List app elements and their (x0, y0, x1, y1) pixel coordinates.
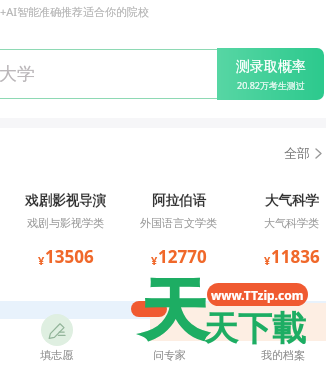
staticText: 天下載 (204, 307, 306, 350)
other: 我的档案 (273, 320, 294, 341)
staticText: 阿拉伯语 (152, 192, 206, 209)
staticText: 问专家 (153, 348, 186, 362)
staticText: 12770 (158, 245, 207, 268)
button[interactable]: 我的档案 (226, 310, 326, 366)
staticText: 天 (141, 269, 207, 352)
staticText: +AI智能准确推荐适合你的院校 (0, 4, 150, 19)
staticText: 戏剧与影视学类 (27, 216, 104, 230)
staticText: 外国语言文学类 (140, 216, 217, 230)
other: 填志愿 (47, 320, 68, 341)
staticText: 我的档案 (261, 348, 305, 362)
staticText: 大学 (0, 63, 35, 86)
button[interactable]: 测录取概率 (217, 48, 324, 100)
staticText: 20.82万考生测过 (237, 79, 306, 91)
staticText: 11836 (271, 245, 320, 268)
button[interactable]: 填志愿 (0, 310, 113, 366)
button[interactable]: 全部 (284, 145, 322, 161)
staticText: 测录取概率 (236, 58, 306, 76)
other: 问专家 (160, 320, 181, 341)
staticText: ¥ (38, 253, 45, 268)
button[interactable]: 戏剧影视导演 (9, 192, 122, 268)
button[interactable]: 问专家 (113, 310, 226, 366)
staticText: 13506 (45, 245, 94, 268)
staticText: www.TTzip.com (211, 287, 304, 303)
button[interactable]: 阿拉伯语 (122, 192, 235, 268)
staticText: ¥ (264, 253, 271, 268)
staticText: 戏剧影视导演 (25, 192, 106, 209)
staticText: 全部 (284, 145, 310, 161)
staticText: 填志愿 (40, 348, 73, 362)
staticText: ¥ (151, 253, 158, 268)
button[interactable]: 大气科学 (235, 192, 326, 268)
button[interactable]: 大学 (0, 49, 230, 99)
staticText: 大气科学类 (264, 216, 319, 230)
staticText: 大气科学 (265, 192, 319, 209)
